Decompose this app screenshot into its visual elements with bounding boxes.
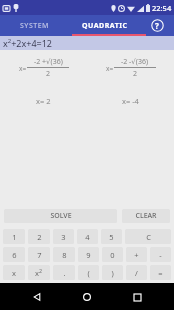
staticText: 5: [109, 232, 114, 242]
button[interactable]: =: [150, 265, 171, 280]
staticText: /: [135, 268, 138, 278]
button[interactable]: Help: [140, 15, 174, 36]
button[interactable]: Home: [74, 284, 100, 310]
button[interactable]: CLEAR: [122, 209, 170, 223]
staticText: -2 +√(36): [34, 57, 63, 67]
staticText: 9: [86, 250, 91, 260]
staticText: 22:54: [152, 3, 172, 13]
button[interactable]: (: [78, 265, 99, 280]
staticText: 6: [12, 250, 17, 260]
button[interactable]: 2: [28, 229, 50, 244]
button[interactable]: .: [53, 265, 75, 280]
staticText: x=: [19, 64, 27, 73]
staticText: 8: [62, 250, 67, 260]
staticText: QUADRATIC: [82, 21, 128, 31]
staticText: 2: [133, 69, 138, 79]
staticText: 2: [46, 69, 51, 79]
staticText: 2: [37, 232, 42, 242]
staticText: x2+2x+4=12: [3, 37, 52, 49]
staticText: -2 -√(36): [121, 57, 149, 67]
button[interactable]: SYSTEM: [0, 15, 70, 36]
button[interactable]: Back: [24, 284, 50, 310]
staticText: SYSTEM: [20, 21, 50, 31]
staticText: x2: [35, 267, 43, 278]
button[interactable]: x2: [28, 265, 50, 280]
button[interactable]: 9: [78, 247, 99, 262]
button[interactable]: ): [102, 265, 123, 280]
staticText: CLEAR: [135, 211, 157, 221]
staticText: ): [111, 268, 114, 278]
button[interactable]: C: [125, 229, 171, 244]
staticText: +: [134, 250, 139, 260]
button[interactable]: 4: [77, 229, 98, 244]
staticText: SOLVE: [50, 211, 72, 221]
staticText: x=: [106, 64, 114, 73]
button[interactable]: x2+2x+4=12: [0, 36, 174, 50]
staticText: x= 2: [36, 96, 51, 106]
staticText: =: [158, 268, 163, 278]
button[interactable]: 8: [53, 247, 75, 262]
staticText: 7: [37, 250, 42, 260]
staticText: (: [87, 268, 90, 278]
staticText: x: [12, 268, 16, 278]
button[interactable]: Recents: [124, 284, 150, 310]
button[interactable]: 0: [102, 247, 123, 262]
button[interactable]: /: [126, 265, 147, 280]
button[interactable]: x: [3, 265, 25, 280]
staticText: 1: [12, 232, 17, 242]
staticText: C: [146, 232, 151, 242]
button[interactable]: 5: [101, 229, 122, 244]
button[interactable]: SOLVE: [4, 209, 117, 223]
button[interactable]: 3: [53, 229, 74, 244]
button[interactable]: -: [150, 247, 171, 262]
staticText: ?: [155, 20, 159, 31]
staticText: -: [159, 250, 162, 260]
button[interactable]: QUADRATIC: [70, 15, 140, 36]
staticText: .: [63, 268, 66, 278]
button[interactable]: +: [126, 247, 147, 262]
button[interactable]: 1: [3, 229, 25, 244]
button[interactable]: 6: [3, 247, 25, 262]
staticText: 0: [110, 250, 115, 260]
staticText: 4: [85, 232, 90, 242]
button[interactable]: 7: [28, 247, 50, 262]
staticText: 3: [61, 232, 66, 242]
staticText: x= -4: [122, 96, 139, 106]
